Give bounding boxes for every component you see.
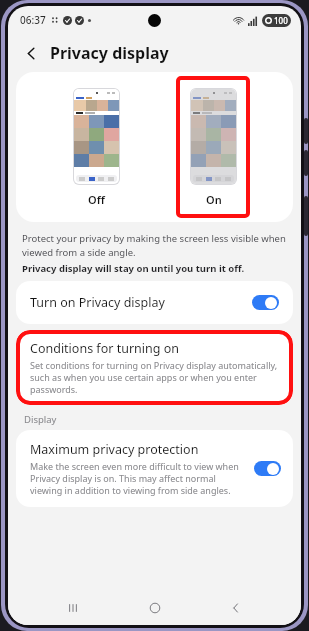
button[interactable]: Turn on Privacy display xyxy=(16,281,293,324)
staticText: Privacy display xyxy=(50,42,169,64)
staticText: 06:37 xyxy=(20,13,46,27)
button[interactable]: Toggle xyxy=(252,295,279,310)
staticText: Set conditions for turning on Privacy di… xyxy=(30,359,279,395)
button[interactable]: Conditions for turning on xyxy=(16,330,293,405)
button[interactable]: Back xyxy=(219,591,253,625)
staticText: Maximum privacy protection xyxy=(30,441,199,458)
button[interactable]: Off xyxy=(59,76,133,218)
staticText: Turn on Privacy display xyxy=(30,294,252,311)
button[interactable]: Back xyxy=(18,40,44,66)
staticText: 100 xyxy=(274,15,288,26)
staticText: Conditions for turning on xyxy=(30,340,179,357)
button[interactable]: Recent apps xyxy=(56,591,90,625)
button[interactable]: Maximum privacy protection xyxy=(16,430,293,507)
button[interactable]: Toggle xyxy=(254,461,281,476)
staticText: On xyxy=(206,192,222,207)
staticText: Privacy display will stay on until you t… xyxy=(22,262,245,275)
button[interactable]: On xyxy=(176,76,250,218)
staticText: Make the screen even more difficult to v… xyxy=(30,460,246,496)
button[interactable]: Home xyxy=(138,591,172,625)
staticText: Off xyxy=(88,192,105,207)
staticText: Display xyxy=(24,413,57,426)
staticText: Protect your privacy by making the scree… xyxy=(22,232,287,259)
